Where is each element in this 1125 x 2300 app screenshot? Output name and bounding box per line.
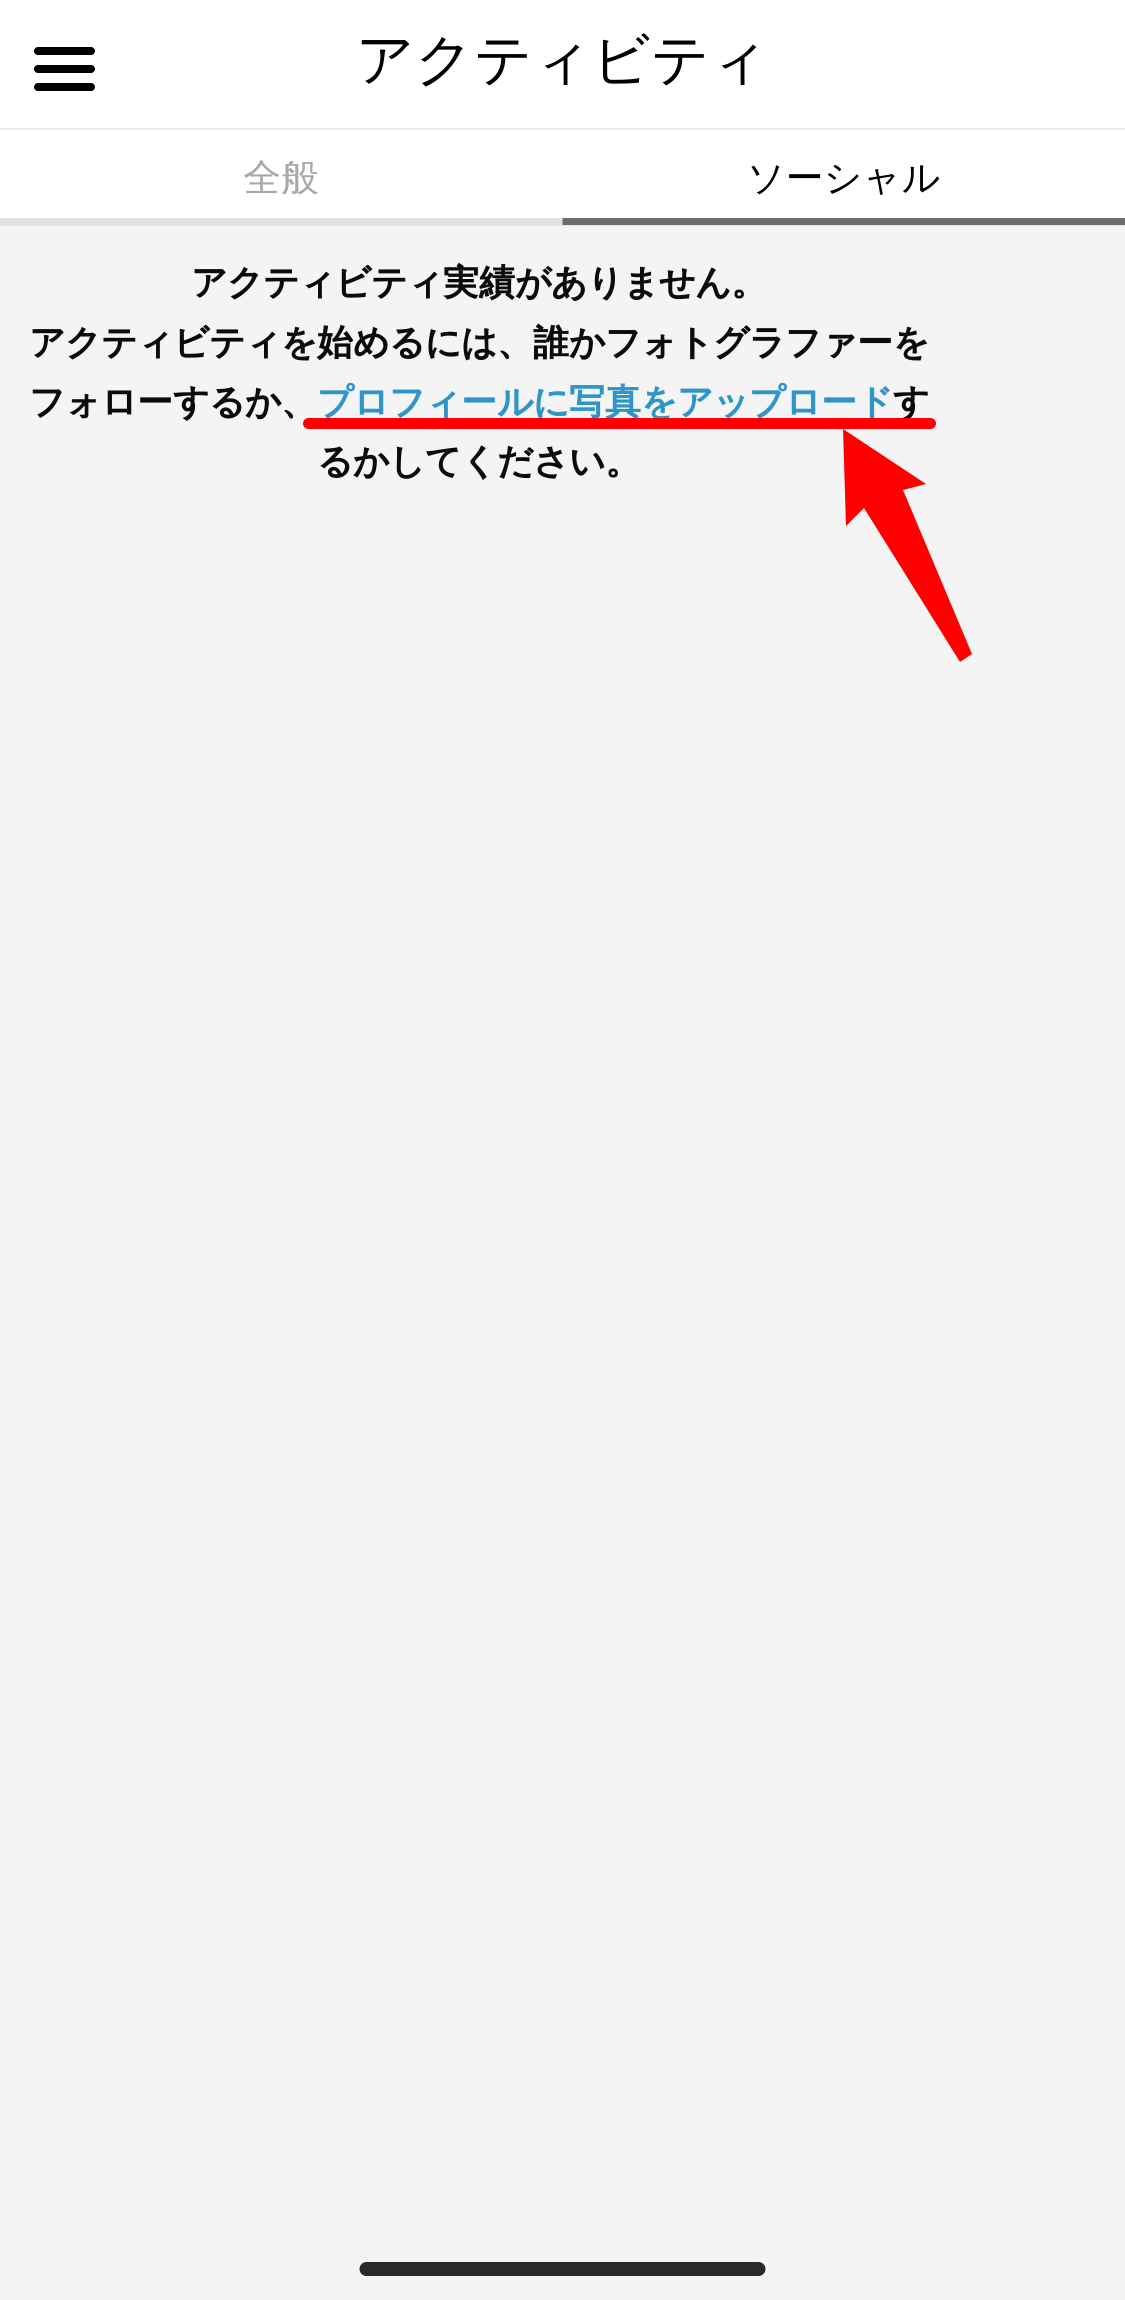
staticText: るかしてください。 [317, 440, 641, 484]
staticText: アクティビティを始めるには、誰かフォトグラファーを [29, 321, 929, 365]
staticText: プロフィールに写真をアップロード [317, 380, 893, 425]
button[interactable]: Menu [0, 0, 129, 128]
staticText: ソーシャル [747, 154, 941, 202]
staticText: アクティビティ実績がありません。 [191, 261, 767, 305]
button[interactable]: ソーシャル [562, 130, 1125, 218]
staticText: フォローするか、 [29, 380, 317, 425]
button[interactable]: プロフィールに写真をアップロード [317, 380, 893, 425]
button[interactable]: 全般 [0, 130, 562, 218]
staticText: す [893, 380, 929, 425]
staticText: アクティビティ [356, 24, 769, 96]
staticText: 全般 [243, 154, 319, 202]
